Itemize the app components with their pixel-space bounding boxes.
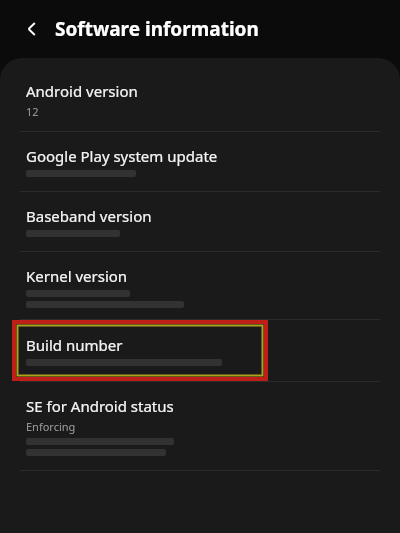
staticText: Software information <box>55 16 259 42</box>
button[interactable]: Build number <box>0 320 400 381</box>
button[interactable]: Android version <box>0 67 400 131</box>
staticText: SE for Android status <box>26 396 174 416</box>
button[interactable]: Google Play system update <box>0 132 400 191</box>
staticText: Enforcing <box>26 419 76 434</box>
staticText: Kernel version <box>26 266 128 286</box>
staticText: Build number <box>26 335 123 355</box>
staticText: 12 <box>26 104 39 119</box>
staticText: Android version <box>26 81 138 101</box>
button[interactable]: SE for Android status <box>0 382 400 470</box>
staticText: Google Play system update <box>26 146 218 166</box>
button[interactable]: Baseband version <box>0 192 400 251</box>
staticText: Baseband version <box>26 206 152 226</box>
button[interactable]: Kernel version <box>0 252 400 319</box>
button[interactable]: Back <box>13 10 51 48</box>
